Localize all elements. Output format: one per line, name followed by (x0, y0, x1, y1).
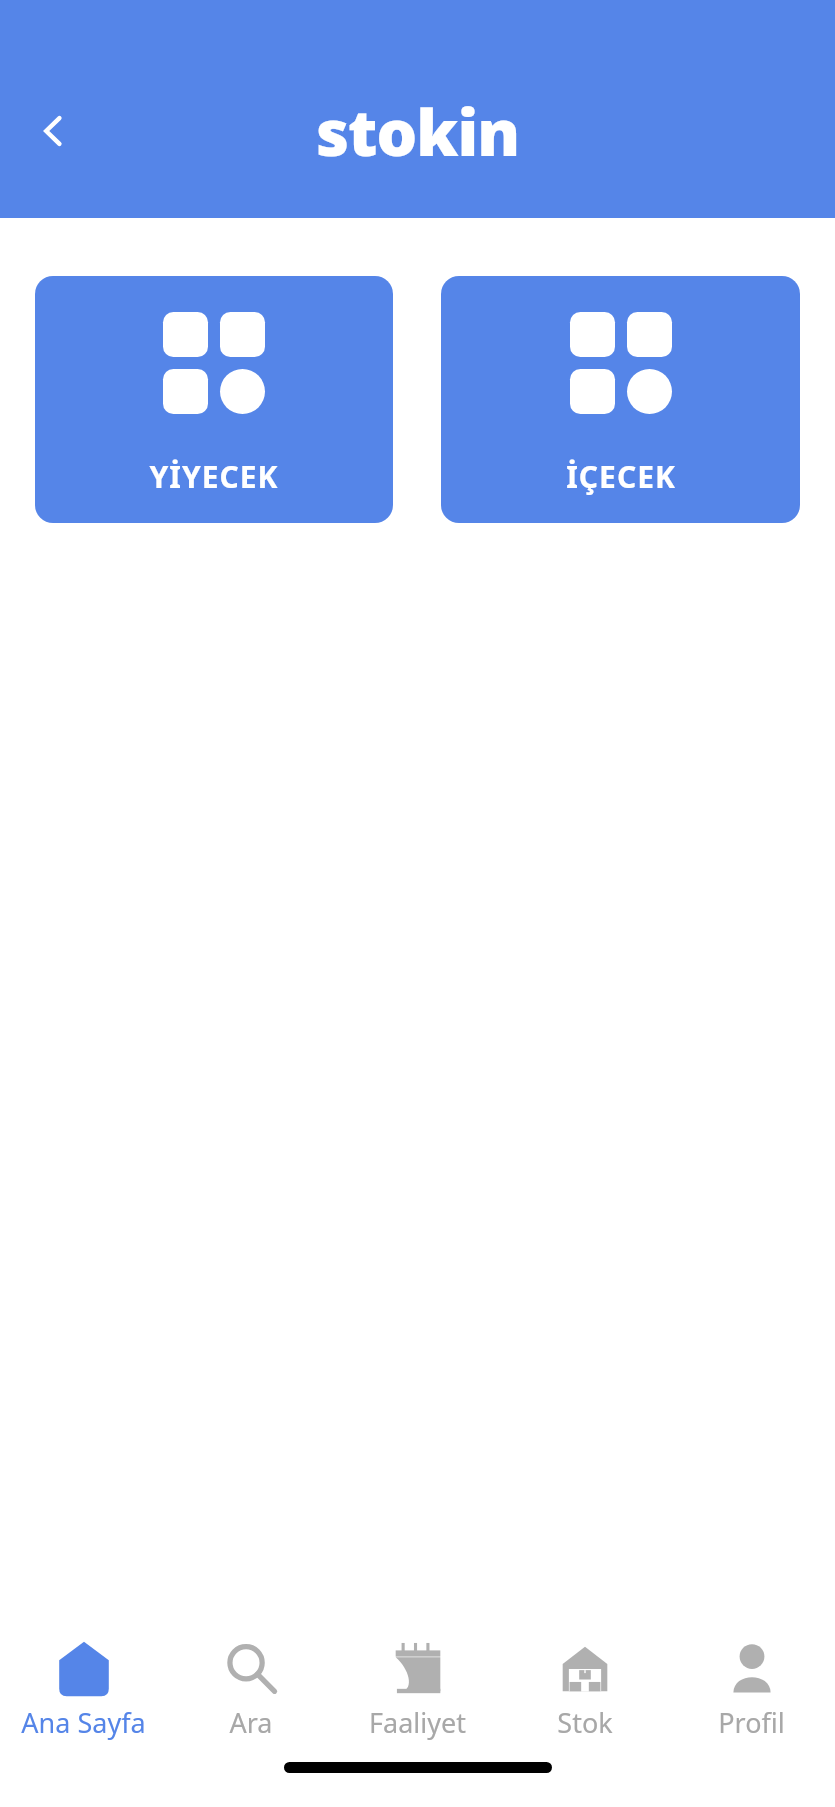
staticText: YİYECEK (149, 456, 279, 497)
staticText: Stok (557, 1704, 613, 1741)
button[interactable]: İÇECEK (441, 276, 800, 523)
staticText: Faaliyet (369, 1704, 466, 1741)
button[interactable]: Back (22, 99, 86, 163)
button[interactable]: Ara (167, 1630, 334, 1748)
staticText: İÇECEK (566, 456, 676, 497)
staticText: Ara (229, 1704, 273, 1741)
button[interactable]: Faaliyet (334, 1630, 501, 1748)
staticText: Ana Sayfa (21, 1704, 146, 1741)
staticText: stokin (316, 88, 520, 175)
button[interactable]: Ana Sayfa (0, 1630, 167, 1748)
button[interactable]: Stok (501, 1630, 668, 1748)
button[interactable]: Profil (668, 1630, 835, 1748)
button[interactable]: YİYECEK (35, 276, 393, 523)
staticText: Profil (718, 1704, 785, 1741)
